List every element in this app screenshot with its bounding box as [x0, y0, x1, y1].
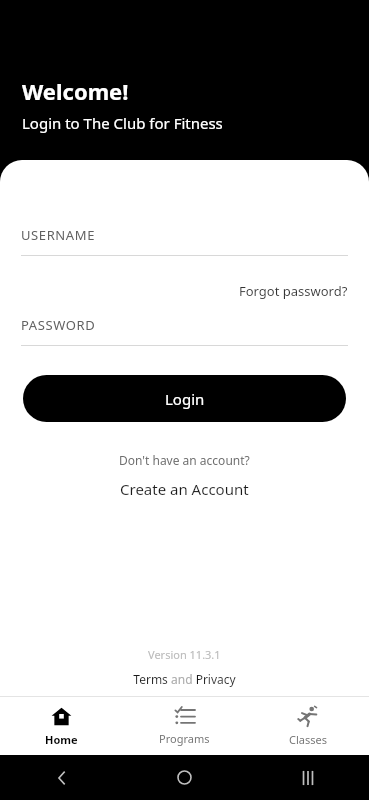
staticText: Create an Account	[120, 479, 249, 499]
button[interactable]: Create an Account	[110, 477, 259, 501]
button[interactable]: Classes	[246, 697, 369, 755]
button[interactable]: Home	[123, 755, 246, 800]
staticText: USERNAME	[21, 226, 95, 244]
staticText: Don't have an account?	[119, 452, 250, 468]
button[interactable]: Home	[0, 697, 123, 755]
staticText: Home	[45, 732, 78, 747]
staticText: PASSWORD	[21, 316, 96, 334]
button[interactable]: Login	[23, 375, 346, 422]
staticText: Classes	[289, 732, 327, 747]
button[interactable]: USERNAME	[0, 226, 369, 256]
staticText: Version 11.3.1	[148, 647, 221, 662]
staticText: Forgot password?	[239, 282, 348, 300]
button[interactable]: Forgot password?	[239, 280, 369, 302]
staticText: Login to The Club for Fitness	[22, 113, 223, 133]
staticText: Login	[165, 389, 205, 409]
button[interactable]: PASSWORD	[0, 316, 369, 346]
button[interactable]: Recent apps	[246, 755, 369, 800]
button[interactable]: Back	[0, 755, 123, 800]
staticText: Welcome!	[22, 76, 129, 106]
staticText: Terms and Privacy	[133, 671, 236, 687]
button[interactable]: Terms and Privacy	[125, 670, 244, 688]
staticText: Programs	[159, 731, 210, 746]
button[interactable]: Programs	[123, 697, 246, 755]
